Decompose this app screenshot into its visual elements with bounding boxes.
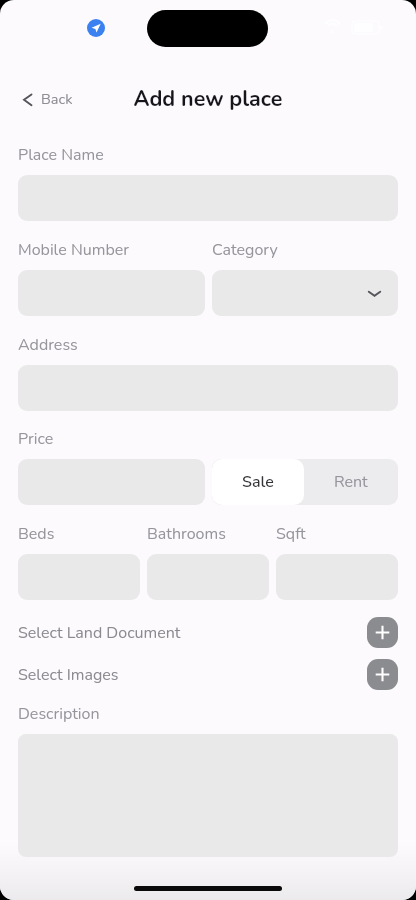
button[interactable]: Sale [212,459,304,505]
staticText: Beds [18,523,55,545]
staticText: Price [18,428,54,450]
staticText: Description [18,703,100,725]
staticText: Select Land Document [18,622,181,644]
button[interactable]: Add [367,659,398,690]
button[interactable]: Location [87,19,105,37]
button[interactable]: Add [367,617,398,648]
staticText: Mobile Number [18,239,129,261]
staticText: Rent [334,471,368,493]
button[interactable]: Select Images [18,659,398,690]
staticText: Back [41,89,73,109]
staticText: Place Name [18,144,104,166]
button[interactable]: Select Land Document [18,617,398,648]
staticText: Sqft [276,523,306,545]
button[interactable]: Rent [304,459,398,505]
button[interactable]: Back [18,88,73,110]
button[interactable] [212,270,398,316]
staticText: Bathrooms [147,523,226,545]
staticText: Category [212,239,278,261]
staticText: Sale [242,471,274,493]
staticText: Address [18,334,78,356]
staticText: Select Images [18,664,119,686]
staticText: Add new place [0,84,416,113]
